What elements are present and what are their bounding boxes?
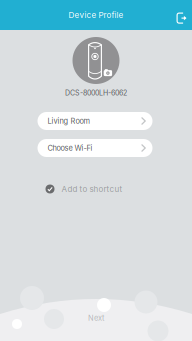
staticText: DCS-8000LH-6062 — [65, 89, 127, 97]
staticText: Choose Wi-Fi — [47, 143, 92, 152]
button[interactable]: Living Room — [37, 112, 152, 130]
button[interactable]: Sign out — [170, 6, 192, 30]
button[interactable]: Choose Wi-Fi — [37, 139, 152, 157]
staticText: Next — [88, 313, 104, 322]
staticText: Device Profile — [68, 10, 123, 20]
button[interactable]: Next — [88, 313, 104, 322]
staticText: Living Room — [47, 116, 90, 125]
staticText: Add to shortcut — [61, 184, 122, 194]
button[interactable]: Add to shortcut — [45, 184, 122, 194]
